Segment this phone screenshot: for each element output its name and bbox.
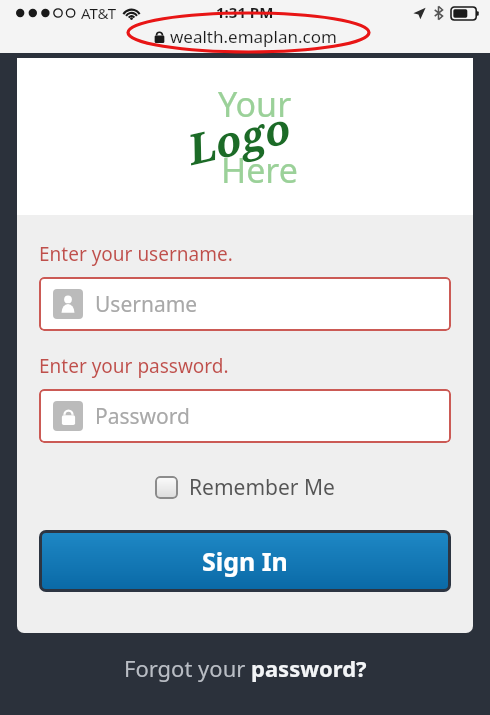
staticText: Enter your password. xyxy=(39,353,229,379)
staticText: Remember Me xyxy=(189,473,335,502)
button[interactable]: Username xyxy=(39,277,451,331)
button[interactable]: Remember Me checkbox xyxy=(39,469,451,506)
staticText: Forgot your password? xyxy=(124,653,367,683)
staticText: Sign In xyxy=(202,544,288,578)
other: Remember Me checkbox xyxy=(155,476,178,499)
button[interactable]: Password xyxy=(39,389,451,443)
staticText: Enter your username. xyxy=(39,241,233,267)
staticText: AT&T xyxy=(81,3,116,23)
staticText: Logo xyxy=(182,98,296,177)
button[interactable]: Forgot your password? xyxy=(112,647,379,689)
staticText: Username xyxy=(95,290,198,319)
staticText: Password xyxy=(95,402,190,431)
staticText: Here xyxy=(221,147,298,193)
staticText: Your xyxy=(218,81,292,127)
staticText: wealth.emaplan.com xyxy=(170,25,337,48)
button[interactable]: Sign In xyxy=(42,533,448,589)
staticText: 1:31 PM xyxy=(216,2,274,22)
